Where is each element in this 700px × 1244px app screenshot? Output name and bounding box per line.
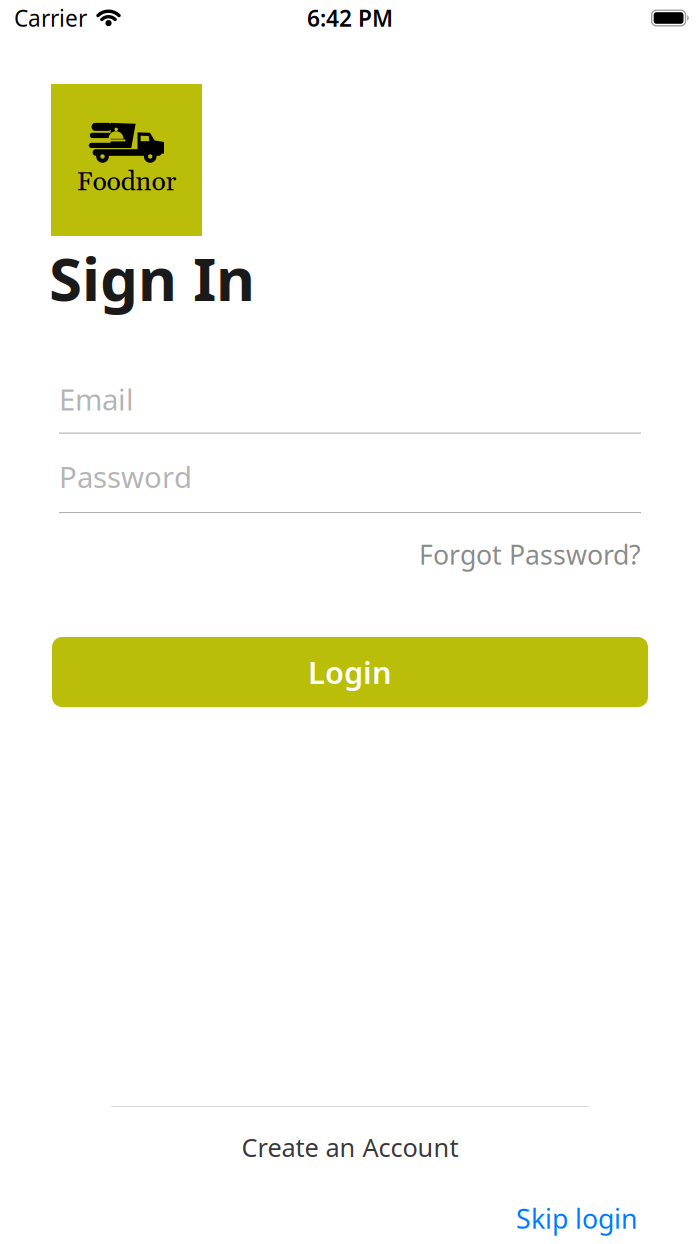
staticText: Forgot Password? <box>419 537 641 572</box>
staticText: Foodnor <box>76 166 176 199</box>
button[interactable]: Forgot Password? <box>419 537 641 572</box>
button[interactable]: Password <box>59 457 641 513</box>
button[interactable]: Skip login <box>516 1201 637 1236</box>
staticText: Create an Account <box>241 1130 458 1164</box>
staticText: Login <box>308 652 392 692</box>
staticText: Password <box>59 457 192 496</box>
staticText: Email <box>59 380 134 419</box>
staticText: Skip login <box>516 1201 637 1236</box>
button[interactable]: Email <box>59 380 641 434</box>
button[interactable]: Create an Account <box>241 1130 458 1164</box>
staticText: Carrier <box>14 3 87 33</box>
staticText: 6:42 PM <box>307 3 393 33</box>
button[interactable]: Login <box>52 637 648 707</box>
staticText: Sign In <box>49 238 255 318</box>
